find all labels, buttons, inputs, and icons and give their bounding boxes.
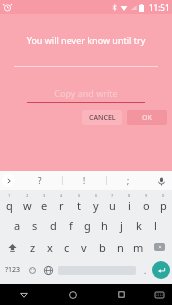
button[interactable]: n bbox=[111, 236, 129, 258]
staticText: 1 bbox=[8, 193, 11, 198]
staticText: CANCEL bbox=[89, 113, 116, 123]
staticText: r bbox=[59, 198, 64, 213]
staticText: c bbox=[64, 240, 70, 255]
staticText: d bbox=[50, 218, 57, 233]
button[interactable]: Copy and write bbox=[27, 87, 145, 103]
button[interactable]: OK bbox=[127, 110, 167, 125]
button[interactable]: CANCEL bbox=[82, 110, 122, 125]
button[interactable]: 3 bbox=[36, 192, 53, 214]
staticText: You will never know until try bbox=[10, 34, 162, 46]
staticText: b bbox=[99, 240, 106, 255]
staticText: u bbox=[109, 198, 116, 213]
staticText: ?123 bbox=[5, 265, 21, 275]
staticText: p bbox=[160, 198, 167, 213]
button[interactable]: m bbox=[129, 236, 147, 258]
staticText: w bbox=[23, 198, 32, 213]
staticText: 2 bbox=[26, 193, 29, 198]
staticText: OK bbox=[142, 113, 152, 123]
staticText: 3 bbox=[43, 193, 46, 198]
staticText: k bbox=[136, 218, 142, 233]
staticText: s bbox=[32, 218, 38, 233]
staticText: ; bbox=[127, 175, 130, 186]
button[interactable]: b bbox=[93, 236, 111, 258]
button[interactable]: l bbox=[147, 214, 164, 236]
staticText: 5 bbox=[78, 193, 81, 198]
button[interactable]: 1 bbox=[0, 192, 18, 214]
button[interactable]: Emoji bbox=[24, 258, 40, 282]
staticText: j bbox=[120, 218, 123, 233]
button[interactable]: 5 bbox=[70, 192, 87, 214]
staticText: a bbox=[14, 218, 21, 233]
staticText: n bbox=[117, 240, 124, 255]
staticText: . bbox=[144, 265, 147, 276]
button[interactable]: 2 bbox=[18, 192, 36, 214]
staticText: m bbox=[133, 240, 144, 255]
button[interactable]: Hide keyboard bbox=[146, 284, 172, 305]
button[interactable]: Change keyboard language bbox=[40, 258, 56, 282]
staticText: z bbox=[30, 240, 36, 255]
button[interactable]: Backspace bbox=[147, 236, 172, 258]
staticText: l bbox=[154, 218, 157, 233]
button[interactable]: Voice input bbox=[154, 174, 168, 188]
button[interactable]: ?123 bbox=[2, 258, 24, 282]
button[interactable]: j bbox=[113, 214, 130, 236]
staticText: o bbox=[143, 198, 150, 213]
button[interactable]: Back bbox=[0, 284, 48, 305]
button[interactable]: ; bbox=[107, 171, 150, 190]
button[interactable]: ? bbox=[18, 171, 62, 190]
button[interactable]: x bbox=[41, 236, 58, 258]
button[interactable]: 4 bbox=[53, 192, 70, 214]
staticText: 11:51 bbox=[149, 2, 170, 13]
button[interactable]: s bbox=[26, 214, 44, 236]
staticText: f bbox=[69, 218, 73, 233]
button[interactable]: ! bbox=[63, 171, 106, 190]
button[interactable]: Shift bbox=[0, 236, 24, 258]
button[interactable]: Enter bbox=[152, 261, 170, 279]
staticText: 9 bbox=[145, 193, 148, 198]
staticText: 0 bbox=[162, 193, 165, 198]
button[interactable]: a bbox=[8, 214, 26, 236]
button[interactable]: c bbox=[58, 236, 75, 258]
staticText: v bbox=[81, 240, 87, 255]
button[interactable]: 0 bbox=[155, 192, 172, 214]
button[interactable]: 7 bbox=[104, 192, 121, 214]
staticText: e bbox=[41, 198, 48, 213]
button[interactable]: . bbox=[138, 258, 152, 282]
button[interactable]: 8 bbox=[121, 192, 138, 214]
button[interactable]: f bbox=[62, 214, 79, 236]
button[interactable]: Expand suggestions bbox=[2, 174, 15, 187]
button[interactable]: z bbox=[24, 236, 41, 258]
button[interactable]: h bbox=[96, 214, 113, 236]
staticText: g bbox=[84, 218, 91, 233]
staticText: 4 bbox=[60, 193, 63, 198]
staticText: y bbox=[93, 198, 99, 213]
staticText: Copy and write bbox=[27, 87, 145, 99]
button[interactable]: 6 bbox=[87, 192, 104, 214]
staticText: 6 bbox=[95, 193, 98, 198]
staticText: 7 bbox=[111, 193, 114, 198]
staticText: x bbox=[47, 240, 53, 255]
button[interactable]: k bbox=[130, 214, 147, 236]
staticText: i bbox=[128, 198, 131, 213]
button[interactable]: Home bbox=[48, 284, 97, 305]
staticText: 8 bbox=[128, 193, 131, 198]
button[interactable]: d bbox=[44, 214, 62, 236]
staticText: ! bbox=[83, 175, 86, 186]
staticText: t bbox=[77, 198, 81, 213]
button[interactable]: v bbox=[75, 236, 93, 258]
button[interactable]: 9 bbox=[138, 192, 155, 214]
staticText: h bbox=[101, 218, 108, 233]
button[interactable]: Recent apps bbox=[97, 284, 146, 305]
staticText: ? bbox=[38, 175, 42, 186]
button[interactable]: g bbox=[79, 214, 96, 236]
staticText: q bbox=[6, 198, 13, 213]
